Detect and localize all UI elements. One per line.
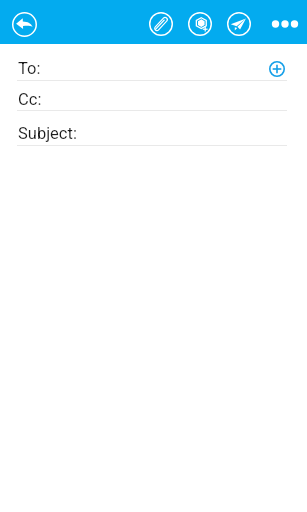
button[interactable]: Cc: <box>0 81 307 111</box>
button[interactable]: Back <box>8 8 40 40</box>
staticText: To: <box>18 59 41 78</box>
staticText: Subject: <box>18 124 77 143</box>
staticText: Cc: <box>18 90 42 109</box>
button[interactable]: To: <box>0 44 307 81</box>
button[interactable]: Add object <box>184 8 216 40</box>
button[interactable]: Attach file <box>145 8 177 40</box>
button[interactable]: More options <box>269 8 301 40</box>
button[interactable]: Send <box>223 8 255 40</box>
button[interactable]: Subject: <box>0 111 307 146</box>
button[interactable]: Add recipient <box>262 54 292 84</box>
